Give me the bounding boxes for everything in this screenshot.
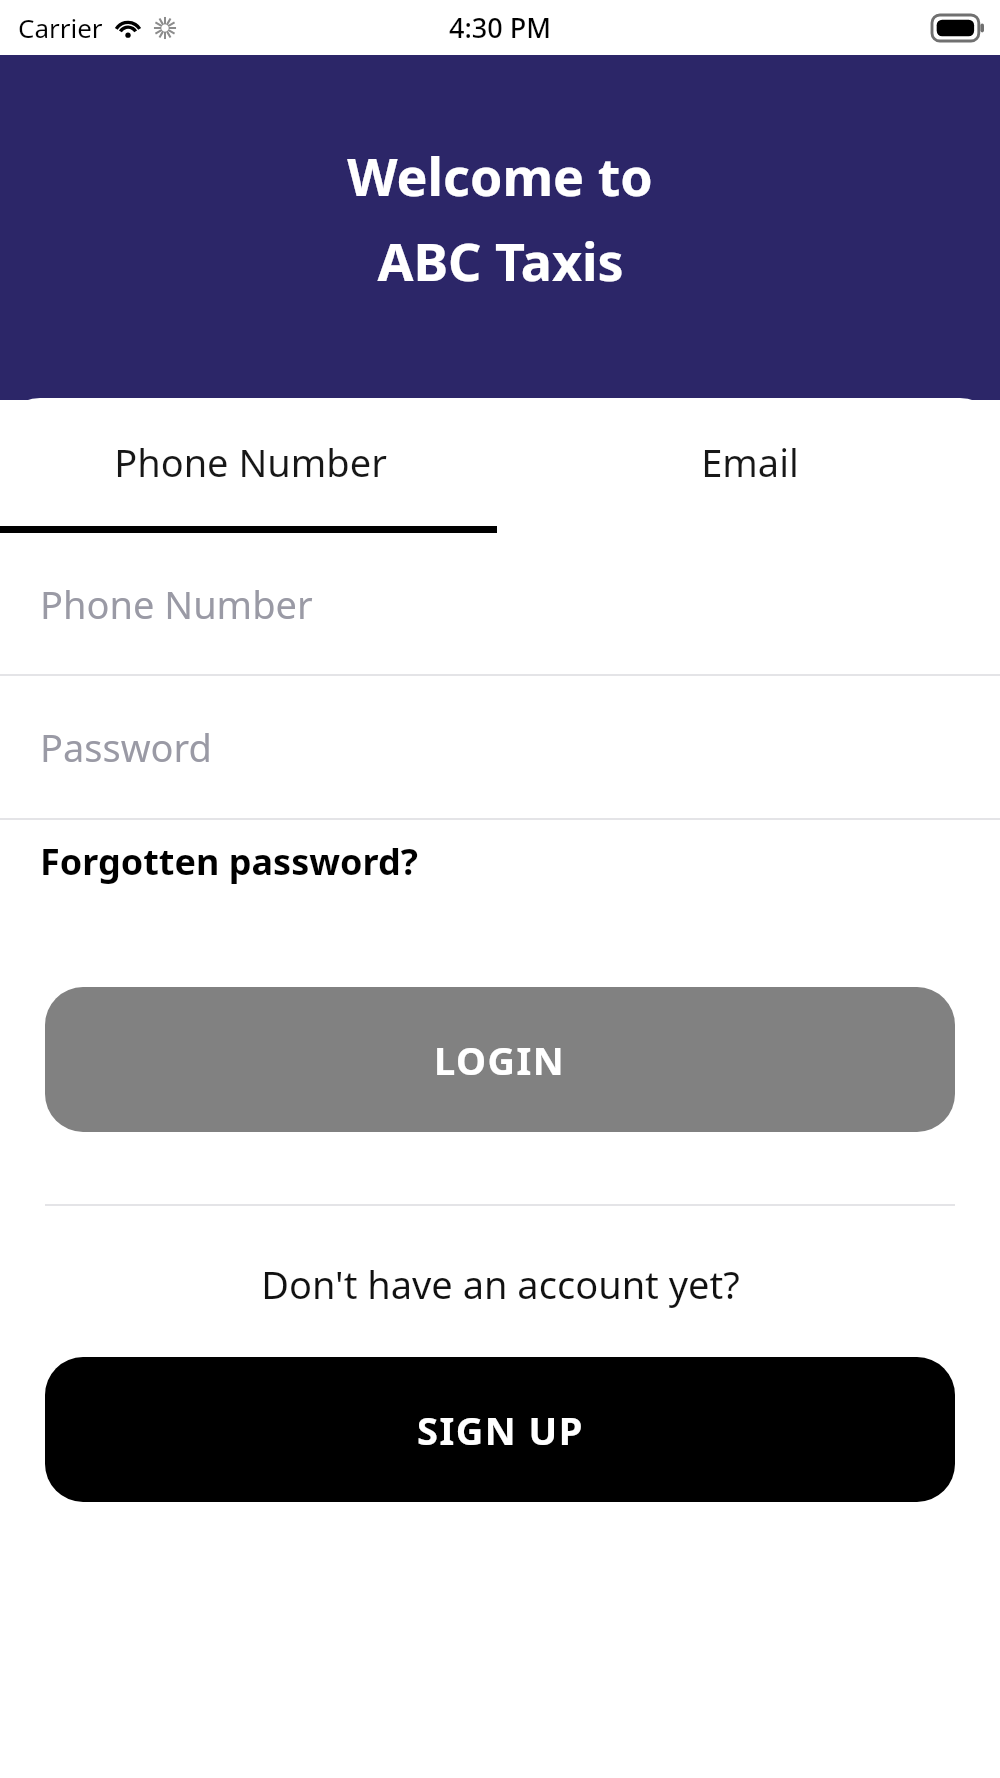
button[interactable]: Forgotten password?	[0, 820, 1000, 902]
staticText: Password	[40, 721, 212, 773]
staticText: Don't have an account yet?	[261, 1258, 740, 1310]
staticText: ABC Taxis	[377, 225, 624, 296]
button[interactable]: Password	[0, 676, 1000, 818]
button[interactable]: Email	[500, 398, 1000, 526]
staticText: Email	[701, 436, 799, 488]
staticText: LOGIN	[434, 1034, 566, 1086]
staticText: Phone Number	[114, 436, 387, 488]
button[interactable]: Phone Number	[0, 533, 1000, 674]
button[interactable]: LOGIN	[45, 987, 955, 1132]
button[interactable]: Phone Number	[0, 398, 500, 526]
staticText: SIGN UP	[417, 1404, 584, 1456]
staticText: Welcome to	[347, 140, 653, 211]
staticText: Forgotten password?	[40, 837, 418, 886]
button[interactable]: SIGN UP	[45, 1357, 955, 1502]
staticText: Carrier	[18, 10, 103, 45]
staticText: 4:30 PM	[449, 9, 551, 46]
staticText: Phone Number	[40, 578, 313, 630]
